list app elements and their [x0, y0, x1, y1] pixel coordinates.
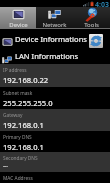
button[interactable]: Network [36, 7, 73, 29]
staticText: 192.168.0.1 [3, 142, 44, 152]
button[interactable]: MAC Address [0, 172, 110, 183]
staticText: Subnet mask [3, 90, 33, 97]
staticText: Gateway [3, 112, 23, 119]
staticText: 192.168.0.1 [3, 120, 44, 130]
button[interactable]: Subnet mask [0, 87, 110, 109]
button[interactable]: Tools [73, 7, 110, 29]
button[interactable]: Gateway [0, 109, 110, 131]
button[interactable]: Device [0, 7, 36, 29]
staticText: Network [42, 21, 67, 29]
button[interactable]: Primary DNS [0, 131, 110, 152]
staticText: Secondary DNS [3, 155, 38, 162]
staticText: Primary DNS [3, 134, 32, 141]
staticText: 4:03 [95, 0, 109, 7]
staticText: --- [3, 163, 8, 170]
staticText: Device [9, 21, 28, 29]
staticText: Tools [84, 21, 99, 29]
staticText: IP address [3, 67, 27, 74]
staticText: Device Informations [15, 34, 87, 44]
button[interactable]: IP address [0, 64, 110, 87]
button[interactable]: Secondary DNS [0, 152, 110, 172]
staticText: MAC Address [3, 175, 33, 182]
staticText: 255.255.255.0 [3, 98, 53, 108]
staticText: 192.168.0.22 [3, 75, 49, 85]
staticText: LAN Informations [15, 51, 79, 61]
button[interactable]: Refresh [89, 34, 103, 48]
